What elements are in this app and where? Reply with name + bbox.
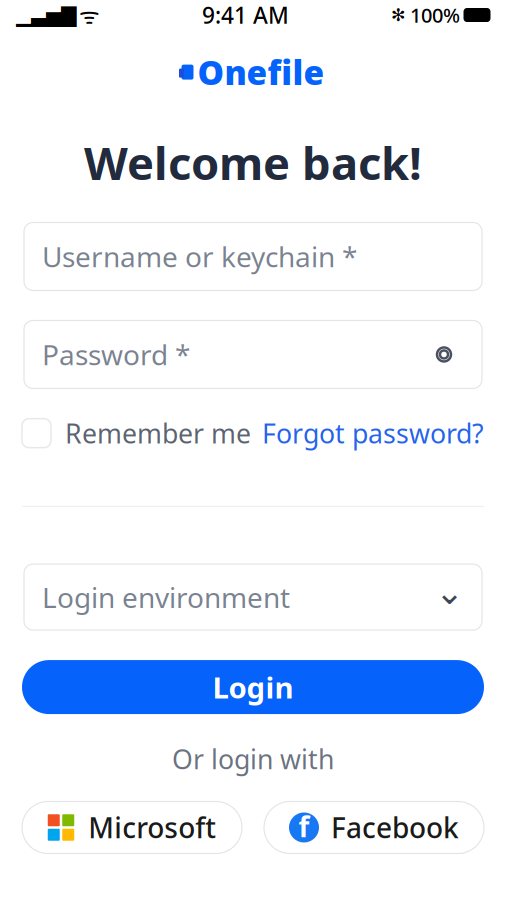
staticText: Or login with xyxy=(172,741,334,776)
staticText: Facebook xyxy=(331,809,459,846)
staticText: Password * xyxy=(42,336,190,373)
button[interactable]: f xyxy=(264,801,484,853)
staticText: Microsoft xyxy=(88,809,216,846)
staticText: Welcome back! xyxy=(84,132,422,192)
staticText: Login environment xyxy=(42,578,290,616)
staticText: ▁▃▅▇ xyxy=(16,4,76,26)
staticText: Login xyxy=(212,668,293,707)
staticText: 100% xyxy=(410,2,460,28)
staticText: Forgot password? xyxy=(262,415,484,451)
staticText: ⌄ xyxy=(435,572,464,612)
button[interactable]: Login environment xyxy=(24,564,482,630)
staticText: ᯤ xyxy=(79,0,100,30)
staticText: Remember me xyxy=(65,415,251,451)
staticText: 9:41 AM xyxy=(202,0,289,30)
staticText: Onefile xyxy=(197,50,324,94)
staticText: f xyxy=(298,808,309,845)
button[interactable]: Show password xyxy=(424,334,464,374)
button[interactable]: Microsoft xyxy=(22,801,242,853)
staticText: Username or keychain * xyxy=(42,238,357,275)
button[interactable]: Login xyxy=(22,660,484,714)
button[interactable]: Remember me xyxy=(22,415,251,451)
button[interactable]: Forgot password? xyxy=(262,415,484,451)
staticText: ✻ xyxy=(391,5,406,25)
